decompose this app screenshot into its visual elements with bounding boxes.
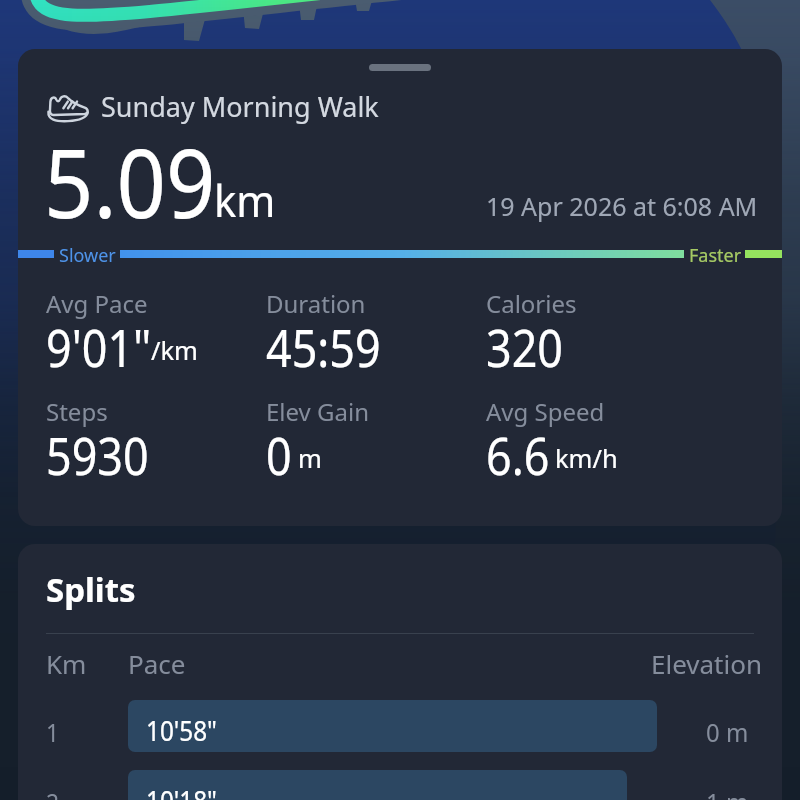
staticText: 0 m bbox=[706, 714, 748, 749]
staticText: Sunday Morning Walk bbox=[101, 88, 379, 125]
button[interactable]: Steps bbox=[46, 395, 163, 464]
button[interactable]: 2 bbox=[18, 770, 782, 800]
staticText: 10'58" bbox=[146, 712, 217, 749]
staticText: 6.6 bbox=[486, 420, 550, 489]
staticText: Km bbox=[46, 646, 87, 681]
staticText: Duration bbox=[266, 287, 366, 320]
staticText: Elev Gain bbox=[266, 395, 369, 428]
other: Walking activity bbox=[46, 91, 90, 123]
staticText: Steps bbox=[46, 395, 108, 428]
button[interactable]: Elev Gain bbox=[266, 395, 369, 464]
staticText: 45:59 bbox=[266, 312, 381, 381]
staticText: km/h bbox=[555, 441, 618, 476]
staticText: 320 bbox=[486, 312, 563, 381]
staticText: Splits bbox=[46, 567, 136, 612]
staticText: Avg Pace bbox=[46, 287, 148, 320]
staticText: 5.09 bbox=[44, 116, 216, 245]
button[interactable]: 1 bbox=[18, 700, 782, 752]
staticText: m bbox=[298, 441, 322, 476]
button[interactable]: Duration bbox=[266, 287, 397, 356]
button[interactable]: Avg Pace bbox=[46, 287, 166, 356]
staticText: 2 bbox=[46, 784, 59, 800]
staticText: Slower bbox=[59, 243, 116, 268]
button[interactable]: Avg Speed bbox=[486, 395, 605, 464]
staticText: Calories bbox=[486, 287, 577, 320]
staticText: 0 bbox=[266, 420, 292, 489]
staticText: 10'18" bbox=[146, 782, 217, 800]
staticText: Avg Speed bbox=[486, 395, 605, 428]
staticText: Pace bbox=[128, 646, 186, 681]
staticText: /km bbox=[151, 333, 198, 368]
staticText: 9'01" bbox=[46, 312, 152, 381]
staticText: 19 Apr 2026 at 6:08 AM bbox=[486, 189, 758, 223]
button[interactable]: Walking activity bbox=[46, 88, 379, 125]
staticText: km bbox=[214, 170, 276, 230]
staticText: 1 bbox=[46, 714, 59, 749]
button[interactable]: Calories bbox=[486, 287, 577, 356]
staticText: Faster bbox=[689, 243, 742, 268]
staticText: 1 m bbox=[706, 784, 748, 800]
staticText: 5930 bbox=[46, 420, 149, 489]
staticText: Elevation bbox=[651, 646, 762, 681]
